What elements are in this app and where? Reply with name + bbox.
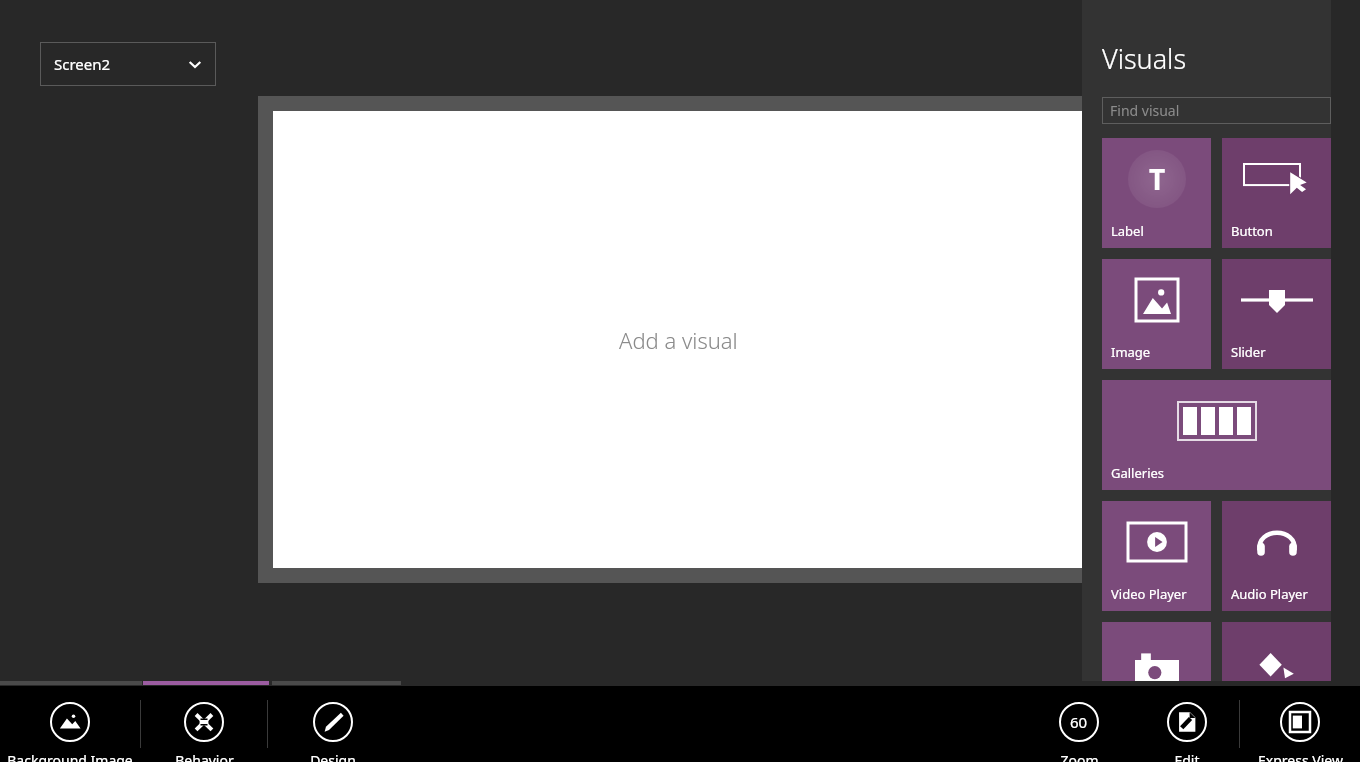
staticText: Label xyxy=(1111,222,1144,240)
staticText: Galleries xyxy=(1111,464,1165,482)
staticText: Visuals xyxy=(1102,40,1187,77)
staticText: Audio Player xyxy=(1231,585,1308,603)
staticText: Button xyxy=(1231,222,1273,240)
staticText: Video Player xyxy=(1111,585,1187,603)
other: Edit xyxy=(1167,702,1207,742)
button[interactable]: Add a visual xyxy=(273,111,1083,568)
button[interactable]: Screen2 xyxy=(40,42,216,86)
other: Behavior xyxy=(184,702,224,742)
staticText: Find visual xyxy=(1110,101,1180,120)
staticText: Screen2 xyxy=(54,54,111,74)
button[interactable]: Edit xyxy=(1135,686,1239,762)
staticText: Design xyxy=(310,751,356,762)
staticText: Zoom xyxy=(1060,751,1099,762)
button[interactable]: Express View xyxy=(1240,686,1360,762)
button[interactable]: Behavior xyxy=(141,686,267,762)
staticText: Add a visual xyxy=(619,325,738,355)
button[interactable]: Video Player xyxy=(1102,501,1211,611)
button[interactable]: Design xyxy=(268,686,397,762)
button[interactable]: Slider xyxy=(1222,259,1331,369)
other: Background Image xyxy=(50,702,90,742)
staticText: Edit xyxy=(1174,751,1200,762)
button[interactable]: Background Image xyxy=(0,686,140,762)
button[interactable]: Galleries xyxy=(1102,380,1331,490)
button[interactable] xyxy=(1102,622,1211,681)
staticText: Background Image xyxy=(7,751,133,762)
button[interactable]: Zoom xyxy=(1023,686,1135,762)
other: Express View xyxy=(1280,702,1320,742)
button[interactable]: Image xyxy=(1102,259,1211,369)
button[interactable]: Audio Player xyxy=(1222,501,1331,611)
button[interactable]: T xyxy=(1102,138,1211,248)
button[interactable]: Button xyxy=(1222,138,1331,248)
other: Zoom xyxy=(1059,702,1099,742)
staticText: Image xyxy=(1111,343,1151,361)
staticText: Behavior xyxy=(175,751,234,762)
staticText: Slider xyxy=(1231,343,1266,361)
staticText: T xyxy=(1149,160,1166,198)
staticText: 60 xyxy=(1070,712,1088,732)
button[interactable]: Find visual xyxy=(1102,97,1331,124)
button[interactable] xyxy=(1222,622,1331,681)
other: Design xyxy=(313,702,353,742)
staticText: Express View xyxy=(1258,751,1343,762)
